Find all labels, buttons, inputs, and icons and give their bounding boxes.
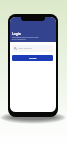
staticText: LOGIN [29, 57, 37, 60]
staticText: Email address [18, 47, 32, 50]
staticText: Welcome back! Please sign [12, 36, 39, 39]
staticText: Login [12, 32, 21, 36]
button[interactable]: LOGIN [12, 55, 53, 61]
button[interactable]: Email address [12, 45, 53, 52]
staticText: in to continue. [12, 38, 27, 41]
